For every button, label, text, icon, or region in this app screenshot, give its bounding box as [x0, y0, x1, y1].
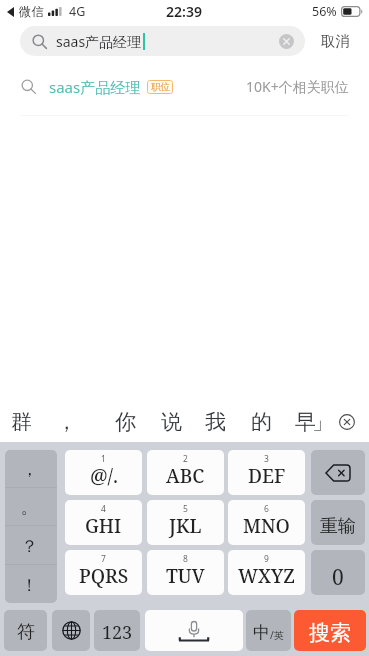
staticText: WXYZ: [238, 563, 295, 589]
button[interactable]: ，: [46, 402, 86, 442]
staticText: 群: [11, 409, 32, 435]
button[interactable]: ！: [5, 565, 57, 603]
staticText: 8: [183, 553, 188, 565]
button[interactable]: 8: [147, 550, 224, 595]
staticText: 的: [251, 409, 272, 435]
button[interactable]: 。: [5, 488, 57, 525]
button[interactable]: 9: [228, 550, 305, 595]
staticText: ！: [21, 575, 38, 596]
staticText: /英: [270, 628, 284, 642]
button[interactable]: 0: [311, 550, 365, 595]
button[interactable]: 群: [1, 402, 41, 442]
staticText: 你: [115, 409, 136, 435]
button[interactable]: 5: [147, 500, 224, 545]
staticText: 4: [101, 503, 106, 515]
staticText: @/.: [90, 463, 118, 489]
staticText: ，: [21, 459, 38, 480]
staticText: 搜索: [309, 620, 351, 646]
staticText: ABC: [166, 463, 205, 489]
staticText: 5: [183, 503, 188, 515]
button[interactable]: 我: [195, 402, 235, 442]
staticText: ，: [56, 409, 77, 435]
button[interactable]: 符: [4, 610, 47, 651]
button[interactable]: 早: [285, 402, 325, 442]
staticText: 中: [253, 622, 270, 643]
button[interactable]: saas产品经理: [0, 58, 369, 115]
button[interactable]: 2: [147, 450, 224, 495]
button[interactable]: Voice input: [145, 610, 243, 651]
staticText: 微信: [19, 4, 44, 20]
button[interactable]: Clear text: [279, 34, 294, 49]
staticText: 10K+个相关职位: [246, 77, 349, 96]
staticText: 职位: [151, 81, 170, 93]
staticText: 重输: [320, 515, 356, 538]
staticText: 」: [314, 409, 324, 435]
button[interactable]: Backspace: [311, 450, 365, 495]
button[interactable]: 重输: [311, 500, 365, 545]
staticText: 6: [264, 503, 269, 515]
button[interactable]: Switch keyboard: [52, 610, 90, 651]
button[interactable]: 搜索: [294, 610, 366, 651]
staticText: PQRS: [79, 563, 129, 589]
button[interactable]: 123: [94, 610, 140, 651]
staticText: 9: [264, 553, 269, 565]
staticText: ？: [21, 536, 38, 557]
staticText: 符: [17, 621, 35, 644]
button[interactable]: Dismiss candidates: [330, 402, 363, 442]
button[interactable]: ，: [5, 450, 57, 487]
staticText: 4G: [69, 3, 86, 20]
button[interactable]: 取消: [313, 26, 358, 56]
button[interactable]: 你: [105, 402, 145, 442]
button[interactable]: 1: [65, 450, 142, 495]
staticText: saas产品经理: [56, 32, 142, 51]
staticText: MNO: [243, 513, 290, 539]
button[interactable]: 4: [65, 500, 142, 545]
button[interactable]: 说: [151, 402, 191, 442]
staticText: 3: [264, 453, 269, 465]
staticText: 2: [183, 453, 188, 465]
staticText: 7: [101, 553, 106, 565]
button[interactable]: 的: [241, 402, 281, 442]
button[interactable]: 3: [228, 450, 305, 495]
staticText: 56%: [312, 3, 337, 20]
button[interactable]: saas产品经理: [20, 26, 305, 56]
button[interactable]: 7: [65, 550, 142, 595]
staticText: TUV: [166, 563, 205, 589]
staticText: 取消: [321, 32, 350, 50]
staticText: 我: [205, 409, 226, 435]
staticText: 。: [21, 497, 38, 518]
staticText: GHI: [85, 513, 122, 539]
staticText: saas产品经理: [49, 77, 141, 97]
staticText: 0: [332, 563, 344, 592]
staticText: 123: [102, 620, 133, 645]
staticText: 早: [295, 409, 316, 435]
staticText: 说: [161, 409, 182, 435]
button[interactable]: ？: [5, 526, 57, 564]
staticText: DEF: [248, 463, 286, 489]
button[interactable]: 中: [246, 610, 291, 651]
staticText: JKL: [169, 513, 202, 539]
staticText: 22:39: [166, 2, 202, 21]
staticText: 1: [101, 453, 106, 465]
button[interactable]: 6: [228, 500, 305, 545]
